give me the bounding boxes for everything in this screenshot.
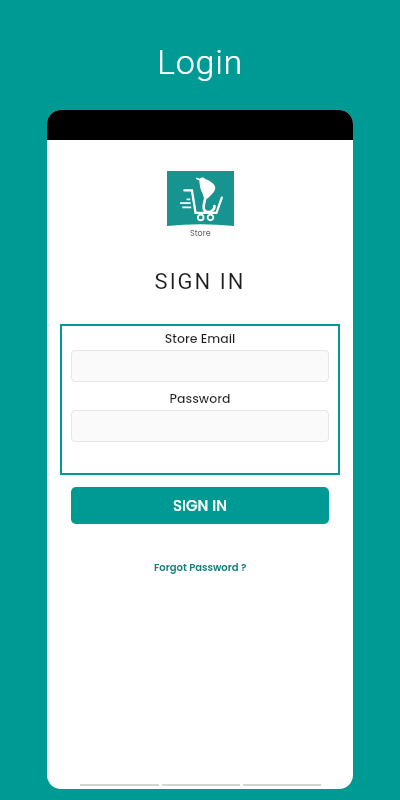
staticText: SIGN IN	[47, 269, 353, 295]
button[interactable]	[71, 350, 329, 382]
button[interactable]	[71, 410, 329, 442]
staticText: Password	[71, 390, 329, 407]
staticText: Store	[190, 228, 211, 239]
staticText: Login	[0, 42, 400, 82]
staticText: Forgot Password ?	[154, 560, 247, 574]
staticText: SIGN IN	[173, 495, 228, 516]
button[interactable]: SIGN IN	[71, 487, 329, 524]
staticText: Store Email	[71, 330, 329, 347]
button[interactable]: Forgot Password ?	[148, 557, 253, 577]
